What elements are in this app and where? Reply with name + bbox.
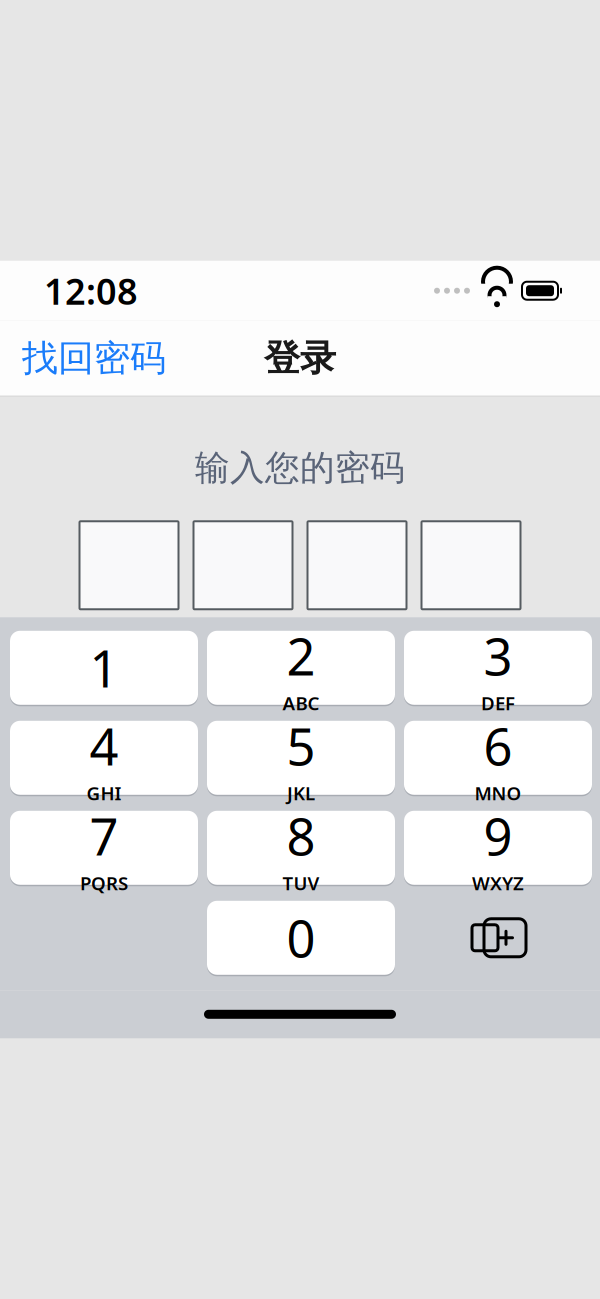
button[interactable]: Password digit field — [193, 521, 292, 609]
button[interactable]: 6 — [404, 719, 592, 796]
button[interactable]: Password digit field — [421, 521, 520, 609]
staticText: 输入您的密码 — [195, 447, 405, 489]
staticText: 6 — [483, 712, 512, 780]
staticText: JKL — [287, 780, 315, 805]
staticText: 0 — [286, 904, 315, 971]
button[interactable]: 7 — [10, 809, 198, 886]
staticText: ABC — [282, 690, 319, 715]
staticText: WXYZ — [472, 870, 524, 895]
staticText: 3 — [483, 622, 512, 690]
staticText: 登录 — [264, 336, 336, 380]
button[interactable]: 3 — [404, 629, 592, 706]
staticText: 5 — [286, 712, 315, 780]
staticText: GHI — [86, 780, 121, 805]
staticText: 2 — [286, 622, 315, 690]
button[interactable]: 0 — [207, 899, 395, 976]
staticText: TUV — [282, 870, 319, 895]
button[interactable]: 2 — [207, 629, 395, 706]
staticText: 8 — [286, 802, 315, 870]
staticText: 12:08 — [44, 267, 138, 315]
staticText: 4 — [89, 712, 118, 780]
staticText: DEF — [481, 690, 515, 715]
staticText: 9 — [483, 802, 512, 870]
button[interactable]: 4 — [10, 719, 198, 796]
button[interactable]: 1 — [10, 629, 198, 706]
button[interactable]: 5 — [207, 719, 395, 796]
button[interactable]: Password digit field — [307, 521, 406, 609]
staticText: 7 — [89, 802, 118, 870]
staticText: PQRS — [80, 870, 128, 895]
staticText: 1 — [89, 634, 118, 701]
button[interactable]: 8 — [207, 809, 395, 886]
button[interactable]: 找回密码 — [0, 326, 188, 390]
button[interactable]: Password digit field — [79, 521, 178, 609]
button[interactable]: Delete — [404, 901, 592, 975]
button[interactable]: 9 — [404, 809, 592, 886]
staticText: 找回密码 — [22, 336, 166, 380]
staticText: MNO — [474, 780, 521, 805]
